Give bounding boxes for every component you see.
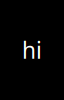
staticText: hi: [22, 35, 42, 65]
